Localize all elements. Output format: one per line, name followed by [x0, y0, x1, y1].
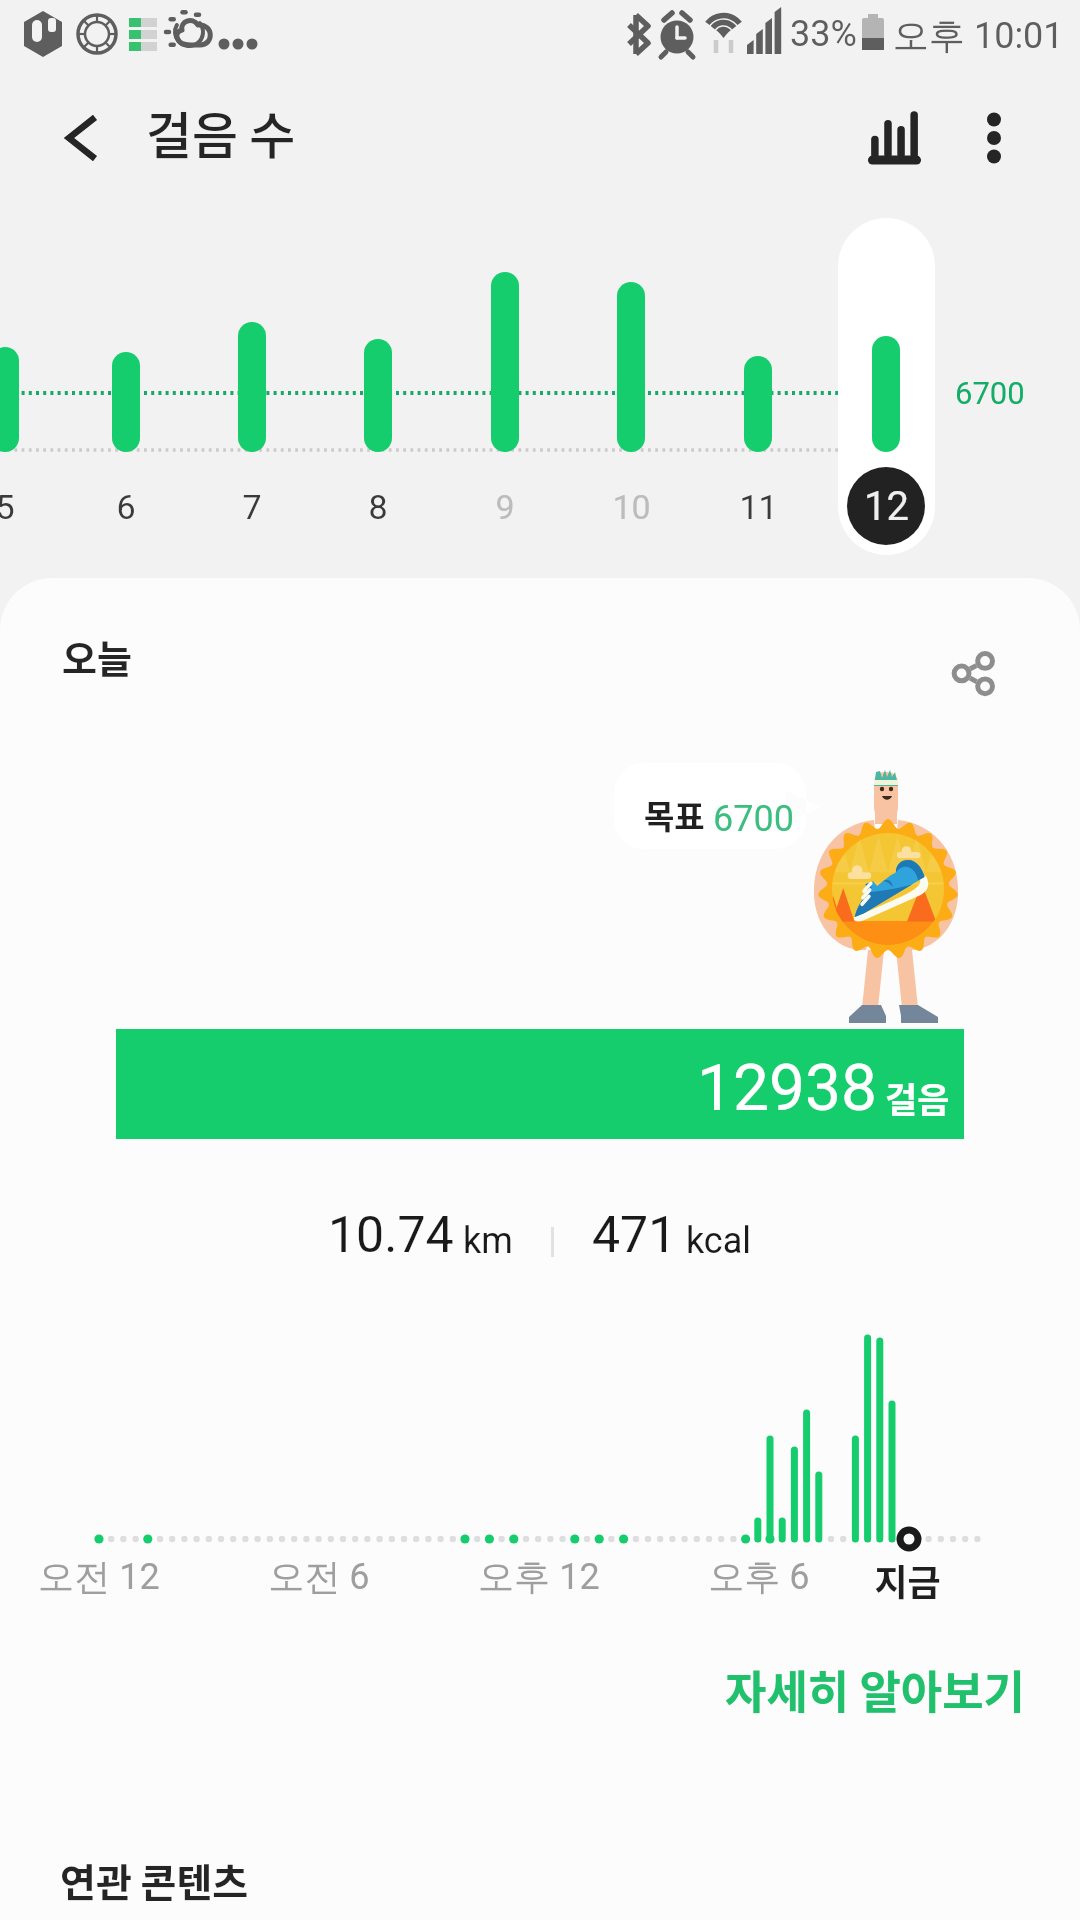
staticText: 11 [739, 487, 778, 527]
button[interactable] [838, 218, 935, 555]
staticText: 5 [0, 487, 15, 527]
button[interactable]: Back [40, 96, 124, 180]
button[interactable]: Share [933, 629, 1017, 713]
staticText: 지금 [874, 1554, 941, 1606]
staticText: 걸음 [885, 1072, 950, 1123]
staticText: 오전 6 [268, 1554, 370, 1599]
staticText: 7 [242, 487, 262, 527]
button[interactable]: 자세히 알아보기 [713, 1645, 1038, 1734]
staticText: 연관 콘텐츠 [60, 1852, 249, 1908]
staticText: 오늘 [62, 629, 132, 684]
staticText: 걸음 수 [146, 96, 296, 168]
staticText: 목표 [644, 791, 713, 839]
staticText: 471 [592, 1206, 677, 1265]
button[interactable]: 12 [847, 467, 925, 545]
staticText: 오후 10:01 [893, 13, 1064, 58]
staticText: 9 [495, 487, 515, 527]
staticText: 오후 6 [708, 1554, 810, 1599]
button[interactable]: More options [952, 96, 1036, 180]
staticText: 6700 [955, 375, 1025, 411]
staticText: km [454, 1220, 513, 1262]
staticText: 자세히 알아보기 [725, 1657, 1026, 1722]
staticText: 오후 12 [478, 1554, 600, 1599]
staticText: 33% [790, 13, 857, 55]
button[interactable]: Chart [851, 97, 937, 183]
staticText: 6700 [713, 798, 794, 840]
staticText: 8 [368, 487, 388, 527]
staticText: 10.74 [328, 1206, 454, 1265]
staticText: 12 [864, 483, 909, 530]
staticText: 10 [612, 487, 651, 527]
staticText: 12938 [697, 1051, 877, 1126]
staticText: kcal [677, 1220, 752, 1262]
staticText: 6 [116, 487, 136, 527]
staticText: 오전 12 [38, 1554, 160, 1599]
button[interactable]: 12938 [116, 1029, 964, 1139]
